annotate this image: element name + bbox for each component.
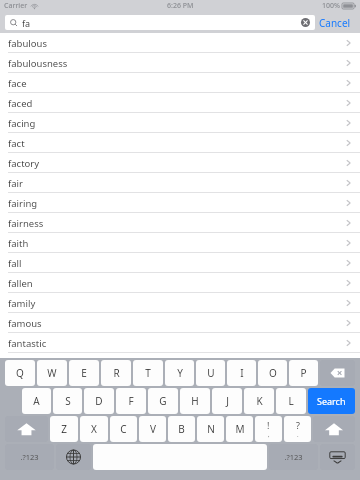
button[interactable]: J	[212, 388, 242, 414]
staticText: fantastic	[8, 337, 47, 350]
button[interactable]: C	[110, 416, 137, 442]
staticText: M	[235, 422, 245, 436]
button[interactable]: U	[196, 360, 225, 386]
button[interactable]: H	[180, 388, 210, 414]
staticText: B	[178, 422, 185, 436]
staticText: J	[226, 394, 229, 408]
button[interactable]: facing	[0, 113, 360, 133]
staticText: face	[8, 77, 27, 90]
button[interactable]: famous	[0, 313, 360, 333]
button[interactable]: V	[139, 416, 166, 442]
staticText: R	[113, 366, 120, 380]
staticText: W	[47, 366, 57, 380]
button[interactable]: Hide keyboard	[320, 444, 355, 470]
button[interactable]: Clear text	[301, 18, 310, 27]
staticText: Q	[16, 366, 24, 380]
button[interactable]: M	[226, 416, 253, 442]
staticText: H	[191, 394, 199, 408]
button[interactable]: Shift	[313, 416, 355, 442]
button[interactable]: B	[168, 416, 195, 442]
staticText: fabulousness	[8, 57, 68, 70]
staticText: ,	[268, 431, 270, 439]
button[interactable]: Z	[50, 416, 78, 442]
button[interactable]: A	[22, 388, 51, 414]
button[interactable]: fabulousness	[0, 53, 360, 73]
button[interactable]: fallen	[0, 273, 360, 293]
staticText: Carrier	[4, 1, 28, 11]
button[interactable]: factory	[0, 153, 360, 173]
button[interactable]: face	[0, 73, 360, 93]
staticText: A	[33, 394, 40, 408]
button[interactable]: fantastic	[0, 333, 360, 353]
button[interactable]: O	[258, 360, 287, 386]
staticText: faced	[8, 97, 33, 110]
button[interactable]: R	[101, 360, 131, 386]
button[interactable]: Y	[165, 360, 194, 386]
staticText: fabulous	[8, 37, 47, 50]
staticText: ?	[296, 419, 300, 431]
staticText: F	[128, 394, 134, 408]
button[interactable]: fairness	[0, 213, 360, 233]
button[interactable]: Backspace	[320, 360, 355, 386]
button[interactable]: N	[197, 416, 224, 442]
staticText: fact	[8, 137, 25, 150]
button[interactable]: fabulous	[0, 33, 360, 53]
button[interactable]: faced	[0, 93, 360, 113]
staticText: famous	[8, 317, 42, 330]
staticText: U	[207, 366, 215, 380]
staticText: .?123	[20, 452, 39, 462]
staticText: facing	[8, 117, 36, 130]
staticText: fairness	[8, 217, 44, 230]
button[interactable]: .?123	[269, 444, 318, 470]
staticText: C	[120, 422, 127, 436]
staticText: O	[269, 366, 277, 380]
staticText: N	[207, 422, 215, 436]
staticText: 100%	[322, 1, 340, 11]
button[interactable]: Cancel	[315, 14, 355, 32]
button[interactable]: .?123	[5, 444, 54, 470]
button[interactable]: E	[69, 360, 99, 386]
staticText: Z	[61, 422, 67, 436]
button[interactable]: !	[255, 416, 282, 442]
staticText: family	[8, 297, 36, 310]
button[interactable]: L	[276, 388, 306, 414]
staticText: fall	[8, 257, 22, 270]
button[interactable]: Shift	[5, 416, 48, 442]
button[interactable]: ?	[284, 416, 311, 442]
button[interactable]: Change language	[56, 444, 91, 470]
button[interactable]: fa	[5, 15, 315, 30]
button[interactable]: T	[133, 360, 163, 386]
button[interactable]: S	[53, 388, 82, 414]
button[interactable]: X	[80, 416, 108, 442]
button[interactable]: family	[0, 293, 360, 313]
button[interactable]: F	[116, 388, 146, 414]
staticText: Cancel	[319, 16, 351, 30]
button[interactable]: Q	[5, 360, 35, 386]
staticText: faith	[8, 237, 29, 250]
staticText: fairing	[8, 197, 38, 210]
staticText: S	[65, 394, 71, 408]
staticText: 6:26 PM	[167, 1, 194, 11]
staticText: K	[256, 394, 263, 408]
button[interactable]: W	[37, 360, 67, 386]
staticText: .?123	[284, 452, 303, 462]
button[interactable]: fact	[0, 133, 360, 153]
button[interactable]: fall	[0, 253, 360, 273]
staticText: V	[150, 422, 156, 436]
staticText: !	[267, 419, 270, 431]
button[interactable]: Search	[308, 388, 355, 414]
staticText: P	[300, 366, 307, 380]
button[interactable]: I	[227, 360, 256, 386]
button[interactable]: P	[289, 360, 318, 386]
button[interactable]: G	[148, 388, 178, 414]
button[interactable]: fairing	[0, 193, 360, 213]
button[interactable]: fair	[0, 173, 360, 193]
staticText: factory	[8, 157, 40, 170]
button[interactable]: faith	[0, 233, 360, 253]
staticText: E	[81, 366, 87, 380]
button[interactable]: D	[84, 388, 114, 414]
staticText: fair	[8, 177, 23, 190]
button[interactable]: K	[244, 388, 274, 414]
staticText: fa	[22, 17, 31, 29]
